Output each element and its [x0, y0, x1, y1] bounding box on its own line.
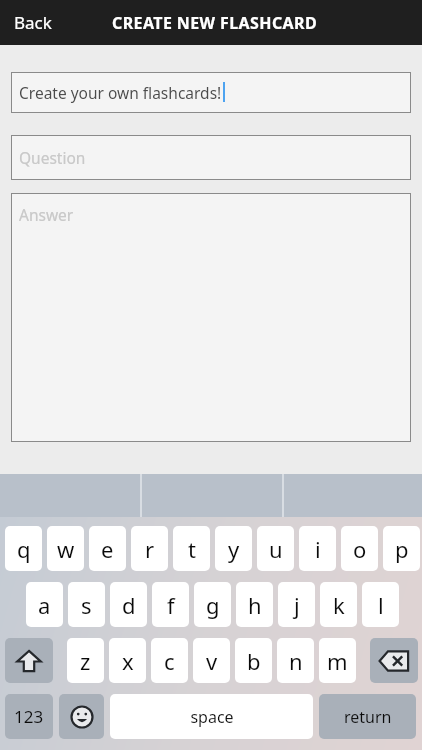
staticText: a	[38, 590, 51, 620]
button[interactable]: u	[257, 526, 294, 571]
staticText: d	[122, 590, 136, 620]
button[interactable]: w	[47, 526, 84, 571]
button[interactable]: Create your own flashcards!	[11, 72, 411, 113]
staticText: w	[57, 534, 75, 564]
button[interactable]: t	[173, 526, 210, 571]
button[interactable]: i	[299, 526, 336, 571]
button[interactable]: Shift	[5, 638, 53, 683]
staticText: f	[167, 590, 175, 620]
button[interactable]: l	[362, 582, 399, 627]
button[interactable]: h	[236, 582, 273, 627]
staticText: i	[315, 534, 321, 564]
staticText: z	[80, 646, 91, 676]
button[interactable]: f	[152, 582, 189, 627]
staticText: v	[206, 646, 218, 676]
button[interactable]: v	[193, 638, 230, 683]
staticText: Back	[14, 11, 52, 34]
staticText: k	[333, 590, 345, 620]
button[interactable]: return	[319, 694, 416, 739]
staticText: x	[122, 646, 134, 676]
button[interactable]: Answer	[11, 193, 411, 442]
staticText: p	[395, 534, 409, 564]
button[interactable]: r	[131, 526, 168, 571]
staticText: t	[188, 534, 196, 564]
button[interactable]: 123	[5, 694, 53, 739]
staticText: n	[289, 646, 303, 676]
staticText: CREATE NEW FLASHCARD	[112, 12, 318, 34]
staticText: g	[206, 590, 220, 620]
staticText: h	[248, 590, 262, 620]
button[interactable]: c	[151, 638, 188, 683]
button[interactable]: space	[110, 694, 313, 739]
staticText: c	[164, 646, 175, 676]
button[interactable]: p	[383, 526, 420, 571]
button[interactable]: b	[235, 638, 272, 683]
button[interactable]: e	[89, 526, 126, 571]
staticText: u	[269, 534, 283, 564]
button[interactable]: z	[67, 638, 104, 683]
button[interactable]: Backspace	[370, 638, 418, 683]
button[interactable]: m	[319, 638, 356, 683]
button[interactable]: x	[109, 638, 146, 683]
button[interactable]: Back	[0, 3, 66, 42]
staticText: Answer	[19, 204, 74, 225]
staticText: q	[17, 534, 31, 564]
staticText: return	[344, 706, 392, 728]
button[interactable]: o	[341, 526, 378, 571]
button[interactable]: n	[277, 638, 314, 683]
staticText: Create your own flashcards!	[19, 82, 222, 103]
staticText: m	[327, 646, 348, 676]
staticText: y	[228, 534, 240, 564]
staticText: b	[247, 646, 261, 676]
staticText: s	[81, 590, 92, 620]
button[interactable]: a	[26, 582, 63, 627]
staticText: l	[378, 590, 384, 620]
button[interactable]: s	[68, 582, 105, 627]
button[interactable]: Question	[11, 135, 411, 180]
staticText: 123	[14, 705, 44, 728]
button[interactable]: Emoji	[59, 694, 104, 739]
staticText: e	[101, 534, 114, 564]
staticText: o	[353, 534, 367, 564]
staticText: r	[145, 534, 155, 564]
button[interactable]: d	[110, 582, 147, 627]
staticText: Question	[19, 147, 86, 168]
button[interactable]: y	[215, 526, 252, 571]
button[interactable]: k	[320, 582, 357, 627]
button[interactable]: q	[5, 526, 42, 571]
button[interactable]: g	[194, 582, 231, 627]
staticText: j	[294, 590, 300, 620]
staticText: space	[190, 706, 234, 728]
button[interactable]: j	[278, 582, 315, 627]
